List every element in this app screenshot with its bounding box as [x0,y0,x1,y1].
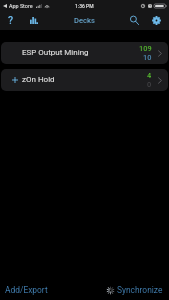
staticText: App Store [9,3,33,9]
button[interactable]: Search [126,11,143,29]
button[interactable]: Statistics [26,11,42,29]
staticText: 0 [147,80,152,89]
button[interactable]: ESP Output Mining [1,42,168,64]
staticText: Decks [74,16,95,25]
button[interactable]: Add/Export [0,282,52,298]
staticText: 10 [143,53,152,62]
button[interactable]: zOn Hold [1,69,168,91]
button[interactable]: Settings [148,11,165,29]
staticText: ESP Output Mining [22,48,89,57]
staticText: 109 [139,44,152,53]
staticText: zOn Hold [22,75,55,84]
staticText: Add/Export [5,285,48,295]
staticText: 1:36 PM [75,3,94,9]
staticText: Synchronize [117,285,163,295]
button[interactable]: Help [3,11,19,29]
staticText: 4 [147,71,152,80]
staticText: ? [8,14,14,26]
button[interactable]: Synchronize [103,282,167,298]
